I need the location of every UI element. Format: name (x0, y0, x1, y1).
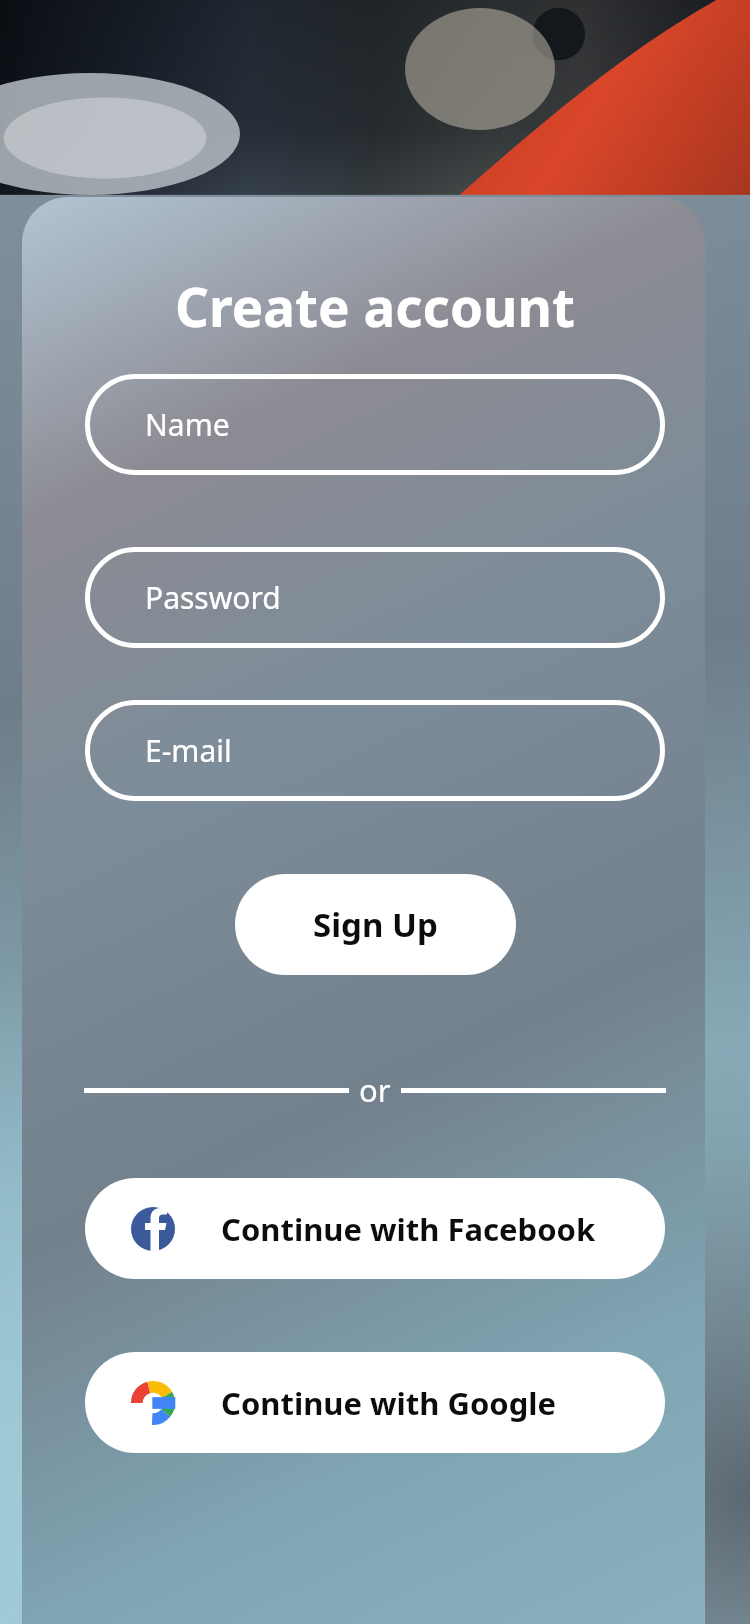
other: Google (130, 1380, 176, 1426)
button[interactable]: Password (85, 547, 665, 648)
button[interactable]: Facebook (85, 1178, 665, 1279)
staticText: Continue with Google (221, 1382, 557, 1424)
staticText: Name (145, 404, 230, 445)
staticText: E-mail (145, 730, 232, 771)
button[interactable]: Sign Up (235, 874, 516, 975)
staticText: Sign Up (313, 902, 438, 947)
button[interactable]: E-mail (85, 700, 665, 801)
staticText: Password (145, 577, 281, 618)
other: Facebook (131, 1207, 175, 1251)
staticText: Create account (175, 270, 575, 342)
staticText: Continue with Facebook (221, 1208, 596, 1250)
button[interactable]: Google (85, 1352, 665, 1453)
button[interactable]: Name (85, 374, 665, 475)
staticText: or (359, 1069, 391, 1111)
